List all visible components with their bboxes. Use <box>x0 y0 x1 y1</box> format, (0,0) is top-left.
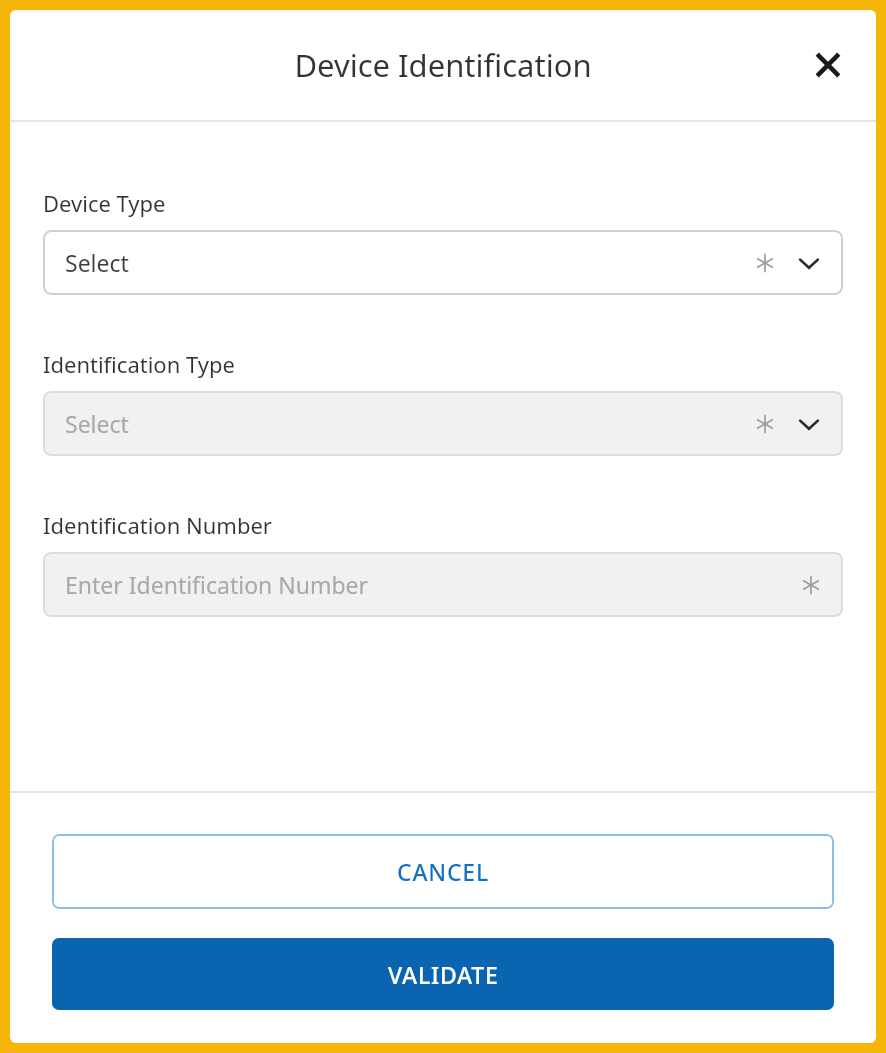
staticText: CANCEL <box>397 856 490 887</box>
staticText: Select <box>65 408 755 439</box>
staticText: Select <box>65 247 755 278</box>
button[interactable]: Enter Identification Number <box>43 552 843 617</box>
staticText: Device Type <box>43 188 166 218</box>
button[interactable]: Select <box>43 391 843 456</box>
staticText: Device Identification <box>294 44 592 86</box>
staticText: Enter Identification Number <box>65 569 801 600</box>
staticText: VALIDATE <box>388 959 499 990</box>
button[interactable]: Select <box>43 230 843 295</box>
button[interactable]: Close <box>800 37 856 93</box>
button[interactable]: CANCEL <box>52 834 834 909</box>
staticText: Identification Type <box>43 349 235 379</box>
button[interactable]: VALIDATE <box>52 938 834 1010</box>
staticText: Identification Number <box>43 510 272 540</box>
